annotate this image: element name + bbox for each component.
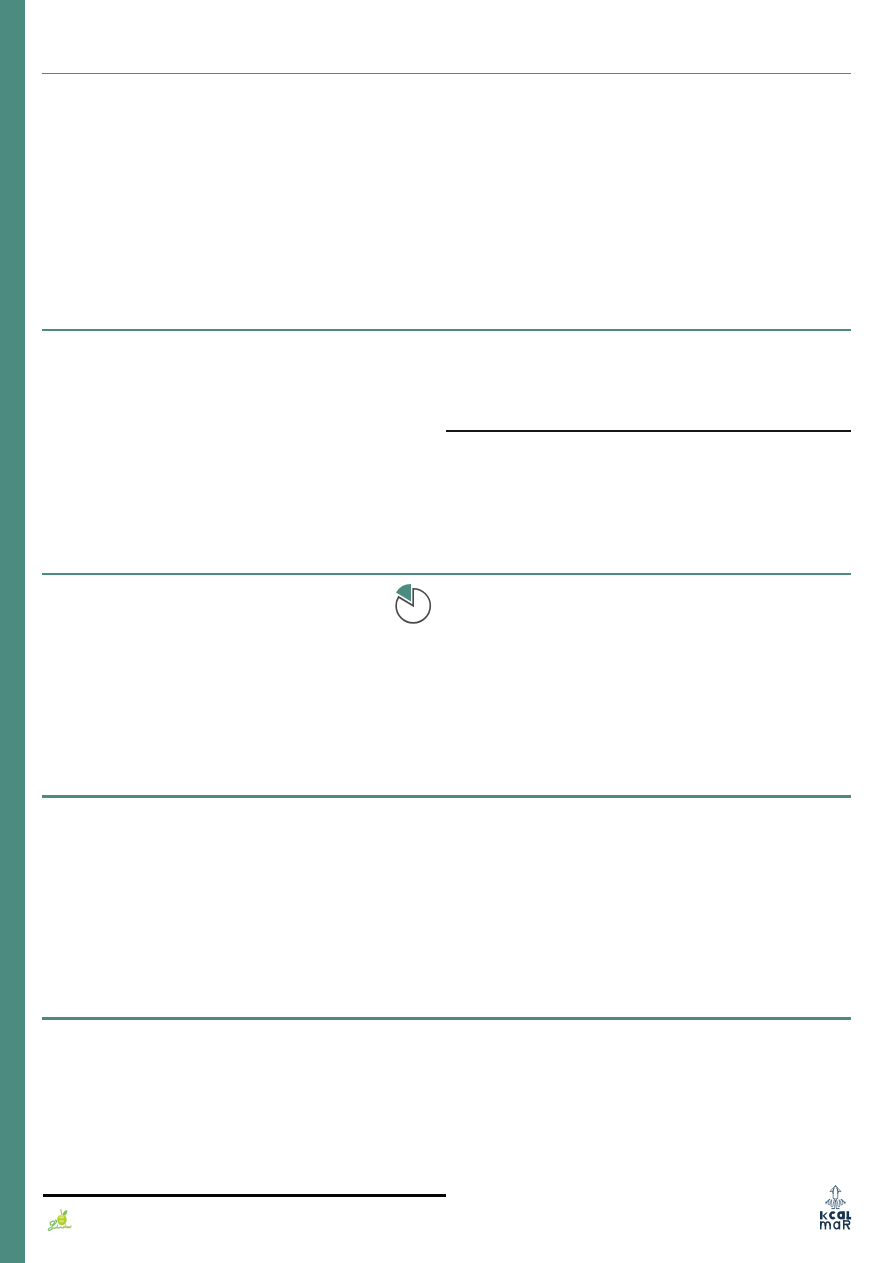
button[interactable]: kcalmar logo	[818, 1183, 854, 1233]
button[interactable]: Pie chart	[390, 580, 440, 630]
button[interactable]: Partner logo	[43, 1208, 77, 1236]
